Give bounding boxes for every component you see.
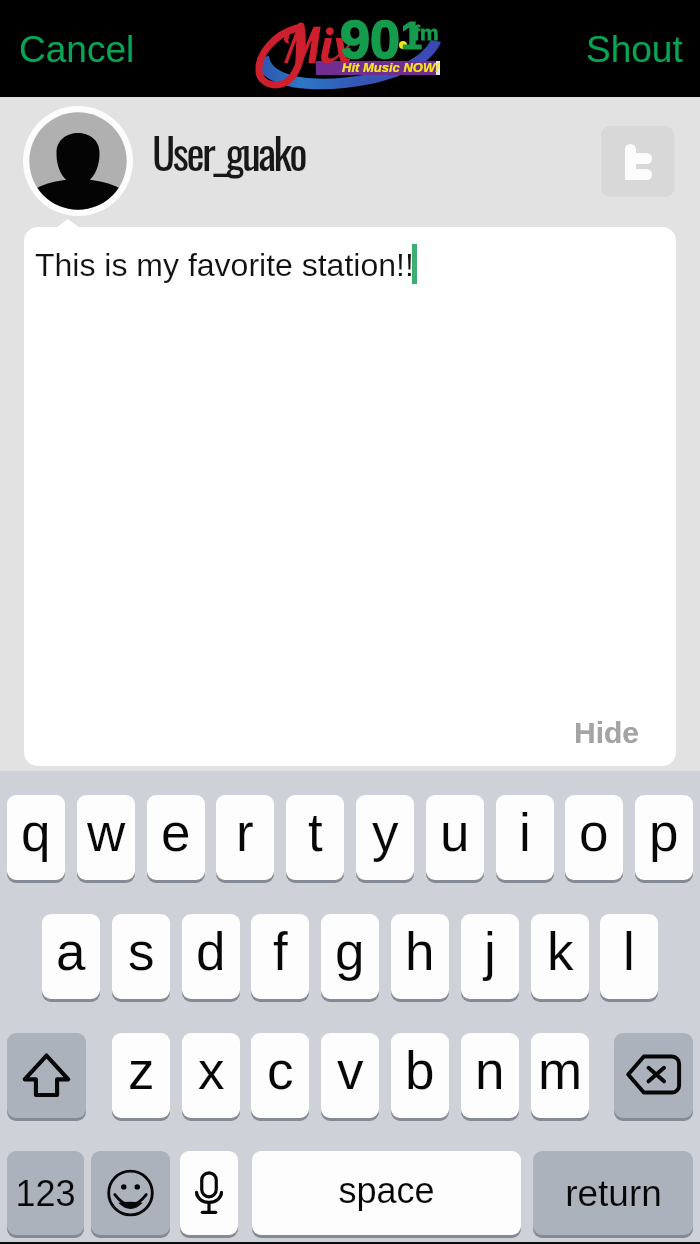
- staticText: r: [236, 803, 254, 862]
- button[interactable]: a: [42, 914, 100, 999]
- button[interactable]: k: [531, 914, 589, 999]
- button[interactable]: d: [182, 914, 240, 999]
- staticText: 123: [15, 1173, 76, 1213]
- button[interactable]: Share on Twitter: [601, 126, 674, 197]
- button[interactable]: s: [112, 914, 170, 999]
- button[interactable]: l: [600, 914, 658, 999]
- button[interactable]: g: [321, 914, 379, 999]
- staticText: q: [21, 803, 51, 862]
- button[interactable]: Dictate: [180, 1151, 238, 1235]
- staticText: p: [649, 803, 679, 862]
- button[interactable]: Mix 90.1 FM: [255, 4, 445, 92]
- button[interactable]: e: [147, 795, 205, 880]
- staticText: m: [538, 1041, 583, 1100]
- staticText: f: [273, 922, 288, 981]
- staticText: k: [547, 922, 574, 981]
- staticText: o: [579, 803, 609, 862]
- staticText: 90: [340, 9, 401, 69]
- button[interactable]: f: [251, 914, 309, 999]
- button[interactable]: Shift: [7, 1033, 86, 1118]
- button[interactable]: x: [182, 1033, 240, 1118]
- button[interactable]: t: [286, 795, 344, 880]
- staticText: w: [87, 803, 126, 862]
- button[interactable]: m: [531, 1033, 589, 1118]
- staticText: g: [335, 922, 365, 981]
- staticText: z: [128, 1041, 155, 1100]
- button[interactable]: n: [461, 1033, 519, 1118]
- staticText: x: [198, 1041, 225, 1100]
- button[interactable]: return: [533, 1151, 693, 1235]
- staticText: s: [128, 922, 155, 981]
- button[interactable]: v: [321, 1033, 379, 1118]
- staticText: Mix: [281, 13, 353, 76]
- button[interactable]: p: [635, 795, 693, 880]
- button[interactable]: z: [112, 1033, 170, 1118]
- button[interactable]: Backspace: [614, 1033, 693, 1118]
- button[interactable]: Cancel: [4, 17, 150, 82]
- button[interactable]: i: [496, 795, 554, 880]
- staticText: h: [405, 922, 435, 981]
- button[interactable]: b: [391, 1033, 449, 1118]
- staticText: d: [196, 922, 226, 981]
- staticText: u: [440, 803, 470, 862]
- staticText: Shout: [586, 29, 683, 70]
- staticText: j: [484, 922, 496, 981]
- button[interactable]: 123: [7, 1151, 84, 1235]
- staticText: t: [308, 803, 323, 862]
- button[interactable]: w: [77, 795, 135, 880]
- button[interactable]: q: [7, 795, 65, 880]
- staticText: space: [338, 1170, 435, 1210]
- staticText: v: [337, 1041, 364, 1100]
- staticText: This is my favorite station!!: [35, 247, 414, 283]
- button[interactable]: c: [251, 1033, 309, 1118]
- staticText: Hit Music NOW!: [342, 60, 440, 75]
- button[interactable]: space: [252, 1151, 521, 1235]
- staticText: e: [161, 803, 191, 862]
- button[interactable]: y: [356, 795, 414, 880]
- button[interactable]: Emoji: [91, 1151, 170, 1235]
- button[interactable]: r: [216, 795, 274, 880]
- button[interactable]: Hide: [562, 704, 652, 762]
- staticText: fm: [413, 21, 439, 44]
- staticText: User_guako: [152, 120, 306, 184]
- staticText: y: [372, 803, 399, 862]
- button[interactable]: u: [426, 795, 484, 880]
- staticText: Cancel: [19, 29, 135, 70]
- staticText: Hide: [574, 716, 640, 750]
- staticText: n: [475, 1041, 505, 1100]
- staticText: i: [519, 803, 531, 862]
- button[interactable]: h: [391, 914, 449, 999]
- staticText: l: [623, 922, 635, 981]
- staticText: return: [565, 1173, 662, 1214]
- button[interactable]: Shout: [571, 17, 698, 82]
- staticText: b: [405, 1041, 435, 1100]
- staticText: a: [56, 922, 86, 981]
- staticText: c: [267, 1041, 294, 1100]
- button[interactable]: o: [565, 795, 623, 880]
- staticText: 1: [401, 15, 423, 57]
- button[interactable]: j: [461, 914, 519, 999]
